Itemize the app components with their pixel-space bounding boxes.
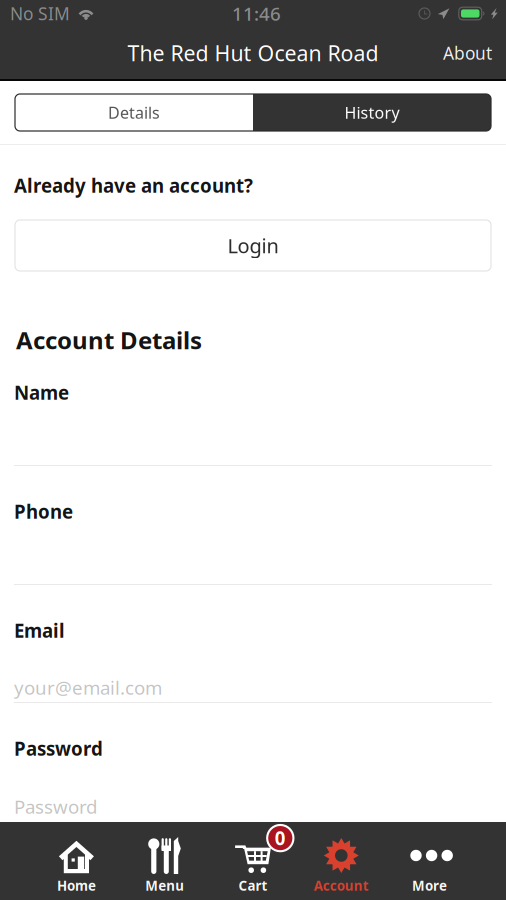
button[interactable]: More — [386, 822, 474, 900]
staticText: Already have an account? — [14, 173, 253, 198]
staticText: Cart — [238, 877, 267, 894]
staticText: Menu — [145, 877, 184, 894]
staticText: Account Details — [16, 324, 202, 356]
staticText: No SIM — [10, 2, 70, 25]
staticText: 11:46 — [232, 1, 281, 26]
button[interactable]: Home — [32, 822, 120, 900]
staticText: your@email.com — [14, 675, 162, 700]
button[interactable]: 0 — [209, 822, 297, 900]
staticText: Name — [14, 380, 69, 405]
button[interactable]: Menu — [121, 822, 209, 900]
staticText: History — [344, 102, 399, 123]
button[interactable]: About — [421, 27, 506, 79]
button[interactable]: Login — [0, 194, 491, 271]
staticText: Login — [227, 232, 278, 259]
button[interactable]: Account — [297, 822, 385, 900]
staticText: Password — [14, 794, 97, 819]
staticText: Email — [14, 618, 65, 643]
staticText: Password — [14, 736, 103, 761]
staticText: The Red Hut Ocean Road — [127, 39, 378, 67]
staticText: Home — [57, 877, 96, 894]
button[interactable]: History — [253, 94, 491, 131]
button[interactable]: Details — [15, 94, 253, 131]
staticText: Details — [108, 102, 160, 123]
staticText: 0 — [275, 826, 286, 850]
staticText: About — [443, 41, 492, 64]
staticText: More — [412, 877, 447, 894]
staticText: Phone — [14, 499, 73, 524]
staticText: Account — [314, 877, 369, 894]
